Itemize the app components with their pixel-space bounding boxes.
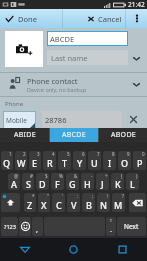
staticText: ! <box>107 193 109 199</box>
button[interactable]: Phone contact <box>0 74 147 96</box>
staticText: 7 <box>97 151 100 157</box>
button[interactable]: U <box>88 151 101 170</box>
button[interactable]: ABIDE <box>0 128 49 142</box>
staticText: ? <box>122 193 124 199</box>
staticText: . <box>110 224 113 234</box>
button[interactable]: S <box>22 173 34 190</box>
button[interactable]: Q <box>1 151 13 170</box>
staticText: X <box>41 199 47 211</box>
button[interactable]: Y <box>73 151 86 170</box>
staticText: K <box>115 178 121 190</box>
staticText: Q <box>3 157 11 169</box>
button[interactable]: Home <box>49 238 98 261</box>
button[interactable]: ?123 <box>1 217 18 236</box>
button[interactable]: Emoji <box>19 217 31 236</box>
button[interactable]: N <box>97 193 110 212</box>
button[interactable]: Z <box>24 193 36 212</box>
button[interactable]: Remove phone number <box>125 111 142 128</box>
staticText: P <box>137 157 143 169</box>
button[interactable]: ABCDE <box>50 128 98 142</box>
staticText: Mobile <box>6 116 27 125</box>
staticText: J <box>101 178 104 190</box>
button[interactable]: 28786 <box>42 111 122 129</box>
button[interactable]: ABCDE <box>47 31 128 46</box>
button[interactable]: Back <box>0 238 49 261</box>
staticText: Phone contact <box>27 76 78 86</box>
staticText: ABIDE <box>14 130 36 140</box>
staticText: 3 <box>37 151 40 157</box>
staticText: M <box>114 199 123 211</box>
button[interactable]: ABODE <box>99 128 147 142</box>
button[interactable]: V <box>67 193 80 212</box>
staticText: B <box>86 199 92 211</box>
button[interactable]: Expand name fields <box>129 51 143 65</box>
staticText: % <box>59 173 63 179</box>
button[interactable]: Backspace <box>129 193 146 212</box>
staticText: # <box>30 173 33 179</box>
button[interactable]: L <box>126 173 139 190</box>
staticText: 8 <box>112 151 115 157</box>
staticText: ABODE <box>111 130 136 140</box>
staticText: S <box>26 178 31 190</box>
staticText: ) <box>136 173 138 179</box>
staticText: Next <box>124 222 139 231</box>
staticText: ' <box>62 193 64 199</box>
button[interactable]: M <box>112 193 125 212</box>
button[interactable]: Next <box>117 217 146 236</box>
button[interactable]: X <box>38 193 50 212</box>
button[interactable]: B <box>82 193 95 212</box>
button[interactable]: Shift <box>1 193 20 212</box>
button[interactable]: More options <box>126 9 147 28</box>
button[interactable]: F <box>51 173 64 190</box>
staticText: R <box>47 157 53 169</box>
button[interactable]: I <box>103 151 116 170</box>
staticText: 5 <box>67 151 70 157</box>
staticText: L <box>130 178 135 190</box>
staticText: C <box>56 199 62 211</box>
staticText: 6 <box>82 151 85 157</box>
staticText: V <box>71 199 77 211</box>
button[interactable]: K <box>111 173 124 190</box>
staticText: O <box>121 157 129 169</box>
staticText: !! <box>110 218 113 223</box>
button[interactable]: G <box>66 173 79 190</box>
staticText: @ <box>14 173 19 179</box>
staticText: N <box>100 199 107 211</box>
button[interactable]: Recent apps <box>98 238 147 261</box>
button[interactable]: Mobile <box>3 111 36 129</box>
staticText: 21:42 <box>128 0 145 9</box>
button[interactable]: R <box>43 151 56 170</box>
button[interactable]: , <box>32 217 43 236</box>
button[interactable]: C <box>52 193 65 212</box>
button[interactable]: O <box>118 151 131 170</box>
button[interactable]: P <box>133 151 146 170</box>
staticText: : <box>77 193 79 199</box>
staticText: , <box>36 224 39 234</box>
staticText: $ <box>45 173 48 179</box>
staticText: - <box>91 173 93 179</box>
staticText: F <box>55 178 60 190</box>
button[interactable]: W <box>15 151 27 170</box>
button[interactable]: Last name <box>47 50 128 65</box>
staticText: Y <box>77 157 83 169</box>
button[interactable]: H <box>81 173 94 190</box>
button[interactable]: E <box>29 151 41 170</box>
staticText: Done <box>18 14 37 24</box>
button[interactable]: !! <box>106 217 116 236</box>
staticText: ; <box>92 193 94 199</box>
staticText: 0 <box>142 151 145 157</box>
staticText: Z <box>27 199 33 211</box>
staticText: * <box>32 193 35 199</box>
staticText: Cancel <box>98 14 122 24</box>
button[interactable]: Done <box>0 9 62 28</box>
button[interactable]: Cancel <box>63 9 125 28</box>
button[interactable]: D <box>36 173 49 190</box>
button[interactable]: A <box>8 173 20 190</box>
staticText: G <box>69 178 76 190</box>
button[interactable]: J <box>96 173 109 190</box>
button[interactable]: T <box>58 151 71 170</box>
staticText: Last name <box>51 53 88 63</box>
button[interactable]: Add photo <box>5 31 43 67</box>
staticText: H <box>84 178 91 190</box>
